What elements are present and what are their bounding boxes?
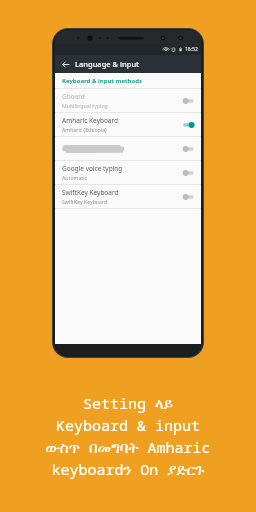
staticText: Setting ላይ <box>0 393 256 413</box>
staticText: Multilingual typing <box>62 102 108 109</box>
button[interactable]: Google voice typing <box>55 161 201 184</box>
button[interactable]: SwiftKey Keyboard <box>55 185 201 208</box>
button[interactable]: Toggle off <box>182 96 195 106</box>
staticText: Keyboard & input <box>0 415 256 435</box>
button[interactable]: Toggle off <box>55 137 201 160</box>
staticText: keyboardን On ያድርጉ <box>0 459 256 479</box>
staticText: 16:52 <box>185 46 198 53</box>
staticText: Automatic <box>62 174 87 181</box>
button[interactable]: Toggle off <box>182 144 195 154</box>
staticText: Amharic (Ethiopia) <box>62 126 107 133</box>
staticText: Google voice typing <box>62 164 123 173</box>
staticText: Amharic Keyboard <box>62 116 119 125</box>
staticText: Keyboard & input methods <box>62 77 143 85</box>
button[interactable]: Gboard <box>55 89 201 112</box>
button[interactable]: Amharic Keyboard <box>55 113 201 136</box>
staticText: Gboard <box>62 92 85 101</box>
staticText: SwiftKey Keyboard <box>62 188 119 197</box>
staticText: Language & input <box>75 59 139 69</box>
button[interactable]: Toggle off <box>182 168 195 178</box>
button[interactable]: Toggle off <box>182 192 195 202</box>
staticText: ውስጥ በመግባት Amharic <box>0 437 256 457</box>
staticText: SwiftKey Keyboard <box>62 198 108 205</box>
button[interactable]: Back <box>59 58 71 70</box>
button[interactable]: Toggle on <box>182 120 195 130</box>
